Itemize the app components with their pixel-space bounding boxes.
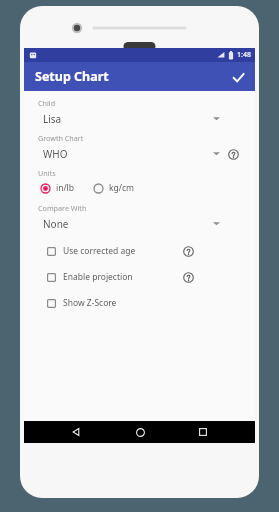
button[interactable]: Recent apps — [192, 421, 214, 443]
button[interactable]: Lisa — [37, 109, 224, 128]
staticText: in/lb — [56, 182, 75, 194]
staticText: Use corrected age — [63, 245, 136, 257]
button[interactable]: Home — [129, 421, 151, 443]
staticText: Setup Chart — [35, 68, 109, 85]
button[interactable]: Use corrected age — [37, 243, 180, 259]
button[interactable]: in/lb — [39, 179, 76, 197]
button[interactable]: Enable projection — [37, 269, 180, 285]
staticText: Compare With — [38, 203, 87, 213]
staticText: Enable projection — [63, 271, 133, 283]
button[interactable]: Back — [65, 421, 87, 443]
button[interactable]: None — [37, 214, 224, 233]
staticText: Child — [38, 98, 56, 108]
staticText: Show Z-Score — [63, 297, 117, 309]
button[interactable]: Help about Enable projection — [180, 269, 196, 285]
button[interactable]: Help about growth chart — [224, 145, 242, 163]
button[interactable]: Show Z-Score — [37, 295, 242, 311]
button[interactable]: Save chart settings — [227, 66, 249, 88]
staticText: Units — [38, 168, 56, 178]
staticText: Lisa — [43, 112, 213, 126]
staticText: WHO — [43, 147, 213, 161]
button[interactable]: WHO — [37, 144, 224, 163]
staticText: Growth Chart — [38, 133, 84, 143]
staticText: None — [43, 217, 213, 231]
staticText: 1:48 — [237, 50, 251, 60]
button[interactable]: kg/cm — [92, 179, 135, 197]
staticText: kg/cm — [109, 182, 134, 194]
button[interactable]: Help about Use corrected age — [180, 243, 196, 259]
